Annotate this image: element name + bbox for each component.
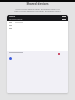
staticText: Settings panel [9,18,23,21]
staticText: Use of the device with multiple users at… [14,7,61,13]
staticText: Shared devices [26,2,49,6]
staticText: Device [9,15,16,18]
